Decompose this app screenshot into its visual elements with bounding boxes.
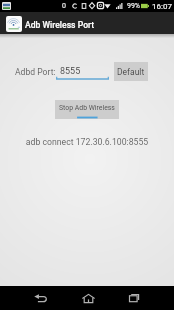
staticText: 8555 bbox=[60, 66, 81, 77]
staticText: 99% bbox=[127, 2, 140, 10]
button[interactable]: Stop Adb Wireless bbox=[55, 100, 119, 119]
button[interactable]: Default bbox=[114, 62, 148, 81]
button[interactable]: Home bbox=[70, 286, 106, 310]
staticText: 0 bbox=[62, 2, 66, 10]
staticText: Default bbox=[117, 67, 145, 77]
staticText: Stop Adb Wireless bbox=[59, 104, 115, 112]
staticText: Adbd Port: bbox=[15, 67, 56, 77]
staticText: Adb Wireless Port bbox=[25, 20, 95, 30]
button[interactable]: 8555 bbox=[56, 64, 109, 80]
button[interactable]: Recent apps bbox=[116, 286, 152, 310]
staticText: 16:07 bbox=[152, 2, 172, 11]
button[interactable]: Back bbox=[22, 286, 58, 310]
staticText: adb connect 172.30.6.100:8555 bbox=[0, 137, 174, 147]
